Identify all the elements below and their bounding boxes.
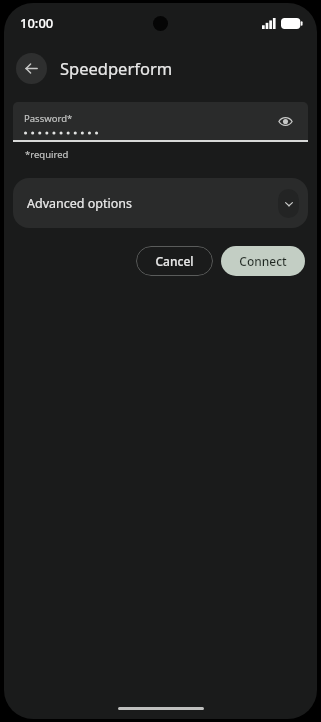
button[interactable]: Back xyxy=(16,53,47,84)
button[interactable]: Connect xyxy=(221,246,305,276)
button[interactable]: Show password xyxy=(272,108,298,134)
staticText: Password* xyxy=(24,112,73,125)
staticText: *required xyxy=(25,148,69,161)
button[interactable]: Advanced options xyxy=(13,178,308,228)
staticText: 10:00 xyxy=(20,14,54,32)
button[interactable]: Cancel xyxy=(136,246,213,276)
staticText: Advanced options xyxy=(27,195,133,212)
button[interactable]: Password* xyxy=(13,102,308,142)
staticText: Connect xyxy=(239,253,287,269)
staticText: Cancel xyxy=(155,253,194,269)
staticText: Speedperform xyxy=(60,57,173,79)
button[interactable]: Expand advanced options xyxy=(278,189,299,218)
